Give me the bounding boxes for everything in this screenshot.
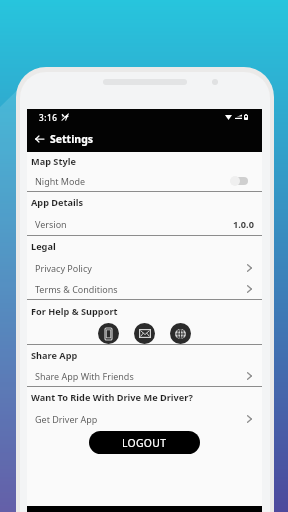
button[interactable]: Get Driver App [27, 408, 262, 429]
button[interactable]: Call support [98, 323, 119, 344]
staticText: Privacy Policy [35, 262, 92, 274]
button[interactable]: Terms & Conditions [27, 278, 262, 299]
staticText: Get Driver App [35, 413, 98, 425]
staticText: LOGOUT [122, 436, 167, 450]
staticText: Want To Ride With Drive Me Driver? [31, 391, 193, 404]
staticText: Terms & Conditions [35, 283, 118, 295]
staticText: Night Mode [35, 175, 86, 187]
staticText: Settings [50, 132, 94, 146]
button[interactable]: Night Mode [27, 170, 262, 191]
staticText: App Details [31, 196, 84, 209]
button[interactable]: LOGOUT [89, 431, 200, 454]
button[interactable]: Version [27, 213, 262, 235]
button[interactable]: Email support [134, 323, 155, 344]
button[interactable]: Back [30, 130, 48, 148]
staticText: Map Style [31, 155, 76, 168]
staticText: 1.0.0 [233, 218, 254, 231]
button[interactable]: Visit website [170, 323, 191, 344]
button[interactable]: Privacy Policy [27, 257, 262, 278]
staticText: Version [35, 218, 67, 230]
staticText: For Help & Support [31, 305, 118, 318]
staticText: Legal [31, 240, 56, 253]
staticText: 3:16 [39, 112, 58, 123]
staticText: Share App With Friends [35, 370, 134, 382]
button[interactable]: Share App With Friends [27, 366, 262, 386]
staticText: Share App [31, 349, 78, 362]
